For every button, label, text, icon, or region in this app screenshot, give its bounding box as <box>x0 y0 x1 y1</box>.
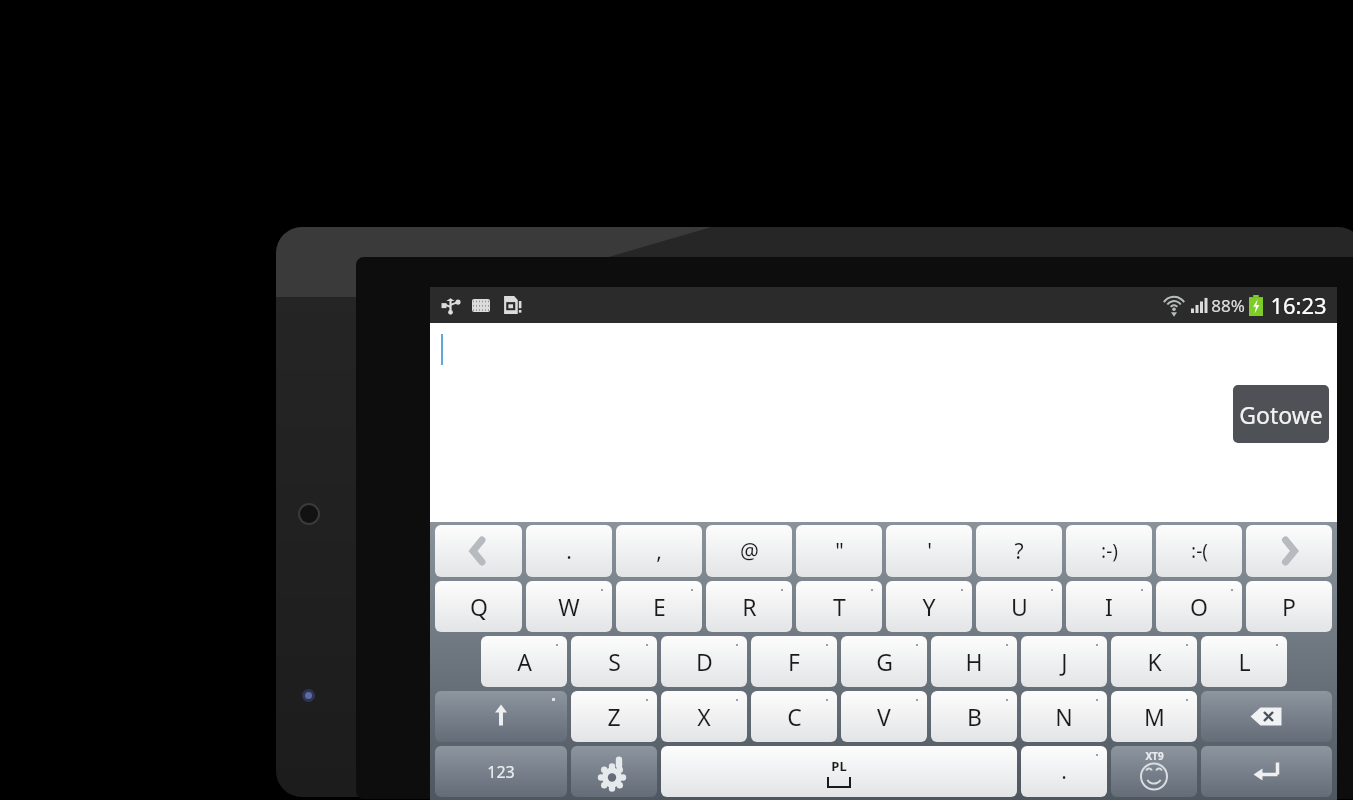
button[interactable]: " <box>796 525 882 577</box>
staticText: R <box>742 591 757 622</box>
staticText: X <box>697 701 711 732</box>
button[interactable]: Gotowe <box>1233 385 1329 443</box>
button[interactable]: V <box>841 691 927 742</box>
button[interactable]: H <box>931 636 1017 687</box>
staticText: S <box>608 646 621 677</box>
staticText: Q <box>470 591 488 622</box>
button[interactable]: Emoji <box>1111 746 1197 797</box>
staticText: XT9 <box>1145 749 1164 763</box>
button[interactable]: :-( <box>1156 525 1242 577</box>
button[interactable]: :-) <box>1066 525 1152 577</box>
button[interactable]: @ <box>706 525 792 577</box>
staticText: I <box>1105 591 1113 622</box>
staticText: A <box>517 646 532 677</box>
button[interactable]: Voice input and settings <box>571 746 657 797</box>
button[interactable]: Backspace <box>1201 691 1332 742</box>
staticText: " <box>835 537 844 566</box>
staticText: K <box>1147 646 1162 677</box>
button[interactable]: T <box>796 581 882 632</box>
staticText: U <box>1011 591 1028 622</box>
staticText: V <box>877 701 891 732</box>
button[interactable]: U <box>976 581 1062 632</box>
button[interactable]: . <box>526 525 612 577</box>
button[interactable]: A <box>481 636 567 687</box>
button[interactable]: Y <box>886 581 972 632</box>
staticText: . <box>1061 757 1067 786</box>
button[interactable]: , <box>616 525 702 577</box>
staticText: H <box>965 646 983 677</box>
button[interactable]: X <box>661 691 747 742</box>
staticText: D <box>696 646 713 677</box>
staticText: C <box>787 701 802 732</box>
button[interactable]: ? <box>976 525 1062 577</box>
staticText: 123 <box>487 761 515 783</box>
staticText: 88% <box>1211 294 1245 317</box>
staticText: F <box>788 646 800 677</box>
staticText: PL <box>831 757 847 775</box>
button[interactable]: Z <box>571 691 657 742</box>
button[interactable]: I <box>1066 581 1152 632</box>
button[interactable]: Enter <box>1201 746 1332 797</box>
staticText: ? <box>1014 537 1024 566</box>
staticText: :-( <box>1191 538 1208 564</box>
button[interactable]: B <box>931 691 1017 742</box>
button[interactable]: PL <box>661 746 1017 797</box>
button[interactable]: ' <box>886 525 972 577</box>
staticText: Y <box>922 591 936 622</box>
button[interactable]: N <box>1021 691 1107 742</box>
button[interactable]: R <box>706 581 792 632</box>
staticText: . <box>566 537 572 566</box>
staticText: N <box>1055 701 1073 732</box>
staticText: E <box>653 591 666 622</box>
button[interactable]: C <box>751 691 837 742</box>
button[interactable]: . <box>1021 746 1107 797</box>
staticText: W <box>558 591 580 622</box>
button[interactable]: Q <box>435 581 522 632</box>
staticText: 16:23 <box>1270 290 1327 320</box>
button[interactable]: D <box>661 636 747 687</box>
button[interactable]: M <box>1111 691 1197 742</box>
staticText: O <box>1190 591 1208 622</box>
staticText: B <box>967 701 982 732</box>
button[interactable]: J <box>1021 636 1107 687</box>
staticText: P <box>1282 591 1296 622</box>
staticText: J <box>1061 646 1068 677</box>
button[interactable]: Shift <box>435 691 567 742</box>
staticText: :-) <box>1101 538 1118 564</box>
button[interactable]: K <box>1111 636 1197 687</box>
staticText: @ <box>740 537 759 566</box>
button[interactable]: E <box>616 581 702 632</box>
staticText: M <box>1144 701 1165 732</box>
button[interactable]: O <box>1156 581 1242 632</box>
button[interactable]: L <box>1201 636 1287 687</box>
staticText: Z <box>607 701 621 732</box>
staticText: L <box>1238 646 1251 677</box>
staticText: T <box>833 591 846 622</box>
button[interactable]: G <box>841 636 927 687</box>
button[interactable]: W <box>526 581 612 632</box>
button[interactable]: F <box>751 636 837 687</box>
button[interactable]: 123 <box>435 746 567 797</box>
button[interactable]: S <box>571 636 657 687</box>
staticText: , <box>656 537 662 566</box>
staticText: ' <box>927 537 932 566</box>
staticText: Gotowe <box>1239 399 1323 430</box>
button[interactable]: P <box>1246 581 1332 632</box>
staticText: G <box>876 646 893 677</box>
button[interactable] <box>435 525 522 577</box>
button[interactable] <box>1246 525 1332 577</box>
